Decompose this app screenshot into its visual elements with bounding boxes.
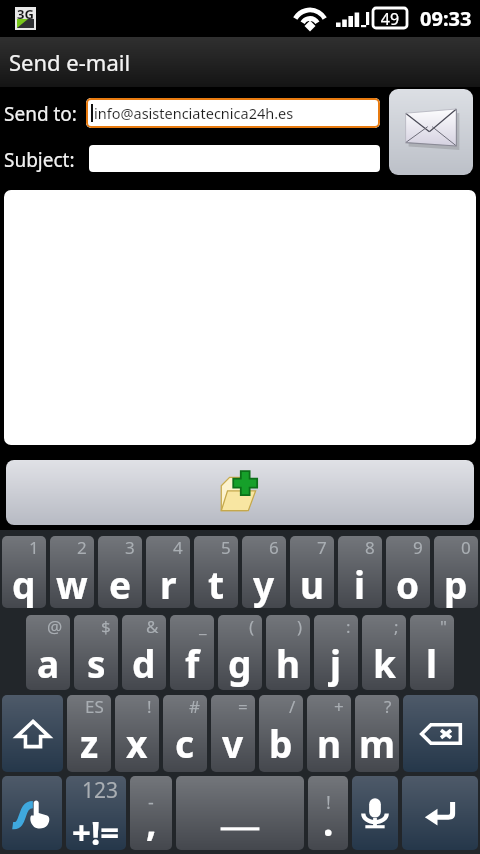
button[interactable]: 1 xyxy=(2,536,46,608)
button[interactable] xyxy=(89,145,380,172)
staticText: @ xyxy=(47,615,63,638)
staticText: e xyxy=(109,559,132,608)
staticText: 5 xyxy=(221,536,231,559)
staticText: / xyxy=(289,695,296,718)
staticText: f xyxy=(185,638,200,688)
button[interactable]: ; xyxy=(362,615,406,690)
staticText: 8 xyxy=(365,536,375,559)
button[interactable]: = xyxy=(211,695,255,772)
button[interactable]: + xyxy=(307,695,351,772)
staticText: 6 xyxy=(269,536,279,559)
button[interactable]: Enter xyxy=(402,776,478,850)
staticText: h xyxy=(276,638,301,688)
staticText: b xyxy=(269,718,293,768)
staticText: _ xyxy=(199,615,207,638)
staticText: 49 xyxy=(378,8,402,30)
staticText: Send e-mail xyxy=(9,47,131,77)
button[interactable]: 6 xyxy=(242,536,286,608)
staticText: & xyxy=(146,615,159,638)
staticText: u xyxy=(300,559,325,608)
staticText: $ xyxy=(101,615,111,638)
button[interactable]: ( xyxy=(218,615,262,690)
staticText: ES xyxy=(85,695,104,718)
staticText: = xyxy=(238,695,248,718)
staticText: y xyxy=(253,559,275,608)
staticText: + xyxy=(334,695,344,718)
staticText: a xyxy=(37,638,60,688)
staticText: c xyxy=(175,718,195,768)
button[interactable]: 3 xyxy=(98,536,142,608)
button[interactable]: 0 xyxy=(434,536,478,608)
staticText: k xyxy=(373,638,396,688)
staticText: ( xyxy=(249,615,255,638)
button[interactable]: 4 xyxy=(146,536,190,608)
staticText: Send to: xyxy=(4,101,77,127)
button[interactable]: @ xyxy=(26,615,70,690)
button[interactable]: $ xyxy=(74,615,118,690)
button[interactable]: ES xyxy=(67,695,111,772)
button[interactable]: Attach file xyxy=(6,460,474,525)
staticText: info@asistenciatecnica24h.es xyxy=(94,103,294,123)
staticText: 09:33 xyxy=(420,5,472,32)
staticText: ) xyxy=(297,615,303,638)
button[interactable]: - xyxy=(130,776,172,850)
staticText: w xyxy=(56,559,88,608)
button[interactable]: 8 xyxy=(338,536,382,608)
button[interactable]: ? xyxy=(355,695,399,772)
staticText: ? xyxy=(384,695,392,718)
button[interactable]: Gesture typing xyxy=(2,776,62,850)
button[interactable]: Send e-mail xyxy=(389,89,473,175)
button[interactable]: 123 xyxy=(66,776,126,850)
staticText: p xyxy=(444,559,468,608)
staticText: j xyxy=(330,638,342,688)
staticText: " xyxy=(440,615,447,638)
staticText: ; xyxy=(394,615,399,638)
button[interactable]: ! xyxy=(308,776,348,850)
staticText: +!= xyxy=(72,810,120,850)
staticText: q xyxy=(12,559,36,608)
button[interactable]: 9 xyxy=(386,536,430,608)
button[interactable]: & xyxy=(122,615,166,690)
button[interactable]: " xyxy=(410,615,454,690)
staticText: . xyxy=(323,796,334,846)
button[interactable]: Shift xyxy=(2,695,63,772)
button[interactable]: Space xyxy=(176,776,304,850)
staticText: n xyxy=(317,718,342,768)
staticText: g xyxy=(228,638,252,688)
staticText: o xyxy=(396,559,420,608)
staticText: i xyxy=(354,559,366,608)
button[interactable]: : xyxy=(314,615,358,690)
button[interactable]: 2 xyxy=(50,536,94,608)
staticText: 3 xyxy=(125,536,135,559)
button[interactable]: ! xyxy=(115,695,159,772)
staticText: Subject: xyxy=(4,147,75,173)
button[interactable]: info@asistenciatecnica24h.es xyxy=(86,98,380,128)
staticText: ! xyxy=(326,790,331,815)
button[interactable]: ) xyxy=(266,615,310,690)
staticText: 7 xyxy=(317,536,327,559)
button[interactable]: Voice input xyxy=(352,776,398,850)
button[interactable]: Backspace xyxy=(403,695,478,772)
staticText: r xyxy=(160,559,177,608)
staticText: 4 xyxy=(173,536,183,559)
staticText: d xyxy=(132,638,156,688)
staticText: l xyxy=(426,638,438,688)
button[interactable]: 7 xyxy=(290,536,334,608)
staticText: : xyxy=(346,615,351,638)
button[interactable]: / xyxy=(259,695,303,772)
staticText: 9 xyxy=(413,536,423,559)
staticText: v xyxy=(222,718,244,768)
staticText: z xyxy=(80,718,99,768)
staticText: m xyxy=(359,718,396,768)
staticText: x xyxy=(126,718,148,768)
button[interactable] xyxy=(4,190,476,445)
button[interactable]: 5 xyxy=(194,536,238,608)
staticText: 123 xyxy=(82,776,119,805)
staticText: 2 xyxy=(77,536,87,559)
staticText: s xyxy=(87,638,106,688)
button[interactable]: _ xyxy=(170,615,214,690)
staticText: 0 xyxy=(461,536,471,559)
staticText: 3G xyxy=(16,5,35,23)
button[interactable]: # xyxy=(163,695,207,772)
staticText: 1 xyxy=(29,536,39,559)
